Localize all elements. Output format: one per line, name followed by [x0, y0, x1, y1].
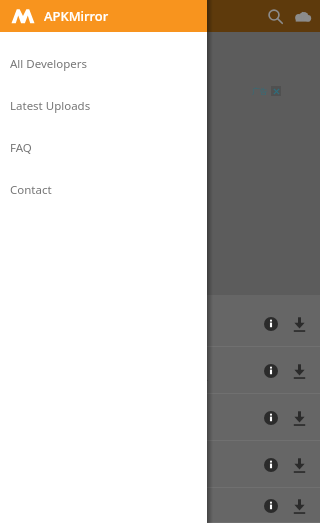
button[interactable]: Download	[0, 441, 320, 488]
button[interactable]: APKMirror	[0, 0, 207, 32]
button[interactable]: Download	[0, 300, 320, 347]
button[interactable]: Search	[259, 0, 291, 32]
staticText: Latest Uploads	[10, 98, 91, 114]
staticText: Contact	[10, 182, 52, 198]
button[interactable]: Download	[284, 491, 314, 521]
button[interactable]: Contact	[0, 169, 207, 211]
button[interactable]: nc.	[0, 347, 320, 394]
button[interactable]: Download	[0, 488, 320, 523]
button[interactable]: Latest Uploads	[0, 85, 207, 127]
button[interactable]: Close ad	[271, 86, 281, 96]
button[interactable]: App info	[256, 309, 286, 339]
button[interactable]: App info	[256, 356, 286, 386]
button[interactable]: All Developers	[0, 43, 207, 85]
button[interactable]: Upload APK	[286, 0, 318, 32]
button[interactable]: Download	[284, 356, 314, 386]
staticText: APKMirror	[44, 7, 109, 25]
button[interactable]: Download	[284, 450, 314, 480]
staticText: All Developers	[10, 56, 87, 72]
button[interactable]: App info	[256, 403, 286, 433]
staticText: 广告	[252, 86, 268, 96]
staticText: FAQ	[10, 140, 32, 156]
button[interactable]: Download	[0, 394, 320, 441]
button[interactable]: FAQ	[0, 127, 207, 169]
staticText: nc.	[196, 371, 209, 383]
button[interactable]: Download	[284, 309, 314, 339]
button[interactable]: Download	[284, 403, 314, 433]
button[interactable]: App info	[256, 450, 286, 480]
button[interactable]: App info	[256, 491, 286, 521]
